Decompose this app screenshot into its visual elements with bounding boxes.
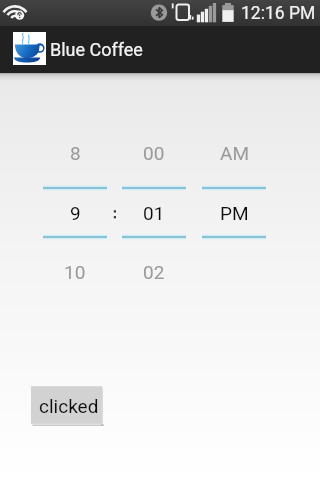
staticText: AM bbox=[220, 142, 249, 164]
staticText: Blue Coffee bbox=[50, 39, 143, 60]
staticText: 00 bbox=[143, 142, 165, 164]
button[interactable]: 02 bbox=[122, 260, 186, 284]
staticText: clicked bbox=[39, 395, 99, 417]
button[interactable]: 8 bbox=[43, 141, 107, 165]
button[interactable]: 10 bbox=[43, 260, 107, 284]
staticText: 9 bbox=[70, 202, 81, 224]
staticText: 02 bbox=[143, 261, 165, 283]
button[interactable]: AM bbox=[202, 141, 266, 165]
staticText: 12:16 PM bbox=[241, 3, 316, 24]
button[interactable]: clicked bbox=[31, 386, 103, 426]
other: App icon bbox=[13, 32, 46, 65]
staticText: 01 bbox=[143, 202, 165, 224]
button[interactable]: 00 bbox=[122, 141, 186, 165]
staticText: PM bbox=[220, 202, 249, 224]
button[interactable]: 9 bbox=[43, 201, 107, 225]
staticText: 8 bbox=[70, 142, 81, 164]
staticText: 10 bbox=[64, 261, 86, 283]
button[interactable]: PM bbox=[202, 201, 266, 225]
button[interactable]: 01 bbox=[122, 201, 186, 225]
